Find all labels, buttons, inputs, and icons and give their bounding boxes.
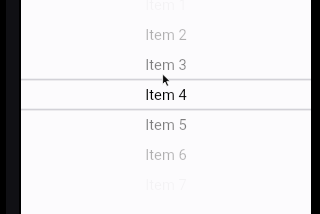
button[interactable]: Item 6 <box>21 139 311 169</box>
staticText: Item 3 <box>145 56 187 73</box>
button[interactable]: Item 3 <box>21 49 311 79</box>
button[interactable]: Item 5 <box>21 109 311 139</box>
staticText: Item 2 <box>145 26 187 43</box>
button[interactable]: Item 4 <box>21 79 311 109</box>
staticText: Item 6 <box>145 146 187 163</box>
staticText: Item 4 <box>145 86 187 103</box>
staticText: Item 5 <box>145 116 187 133</box>
button[interactable]: Item 2 <box>21 19 311 49</box>
